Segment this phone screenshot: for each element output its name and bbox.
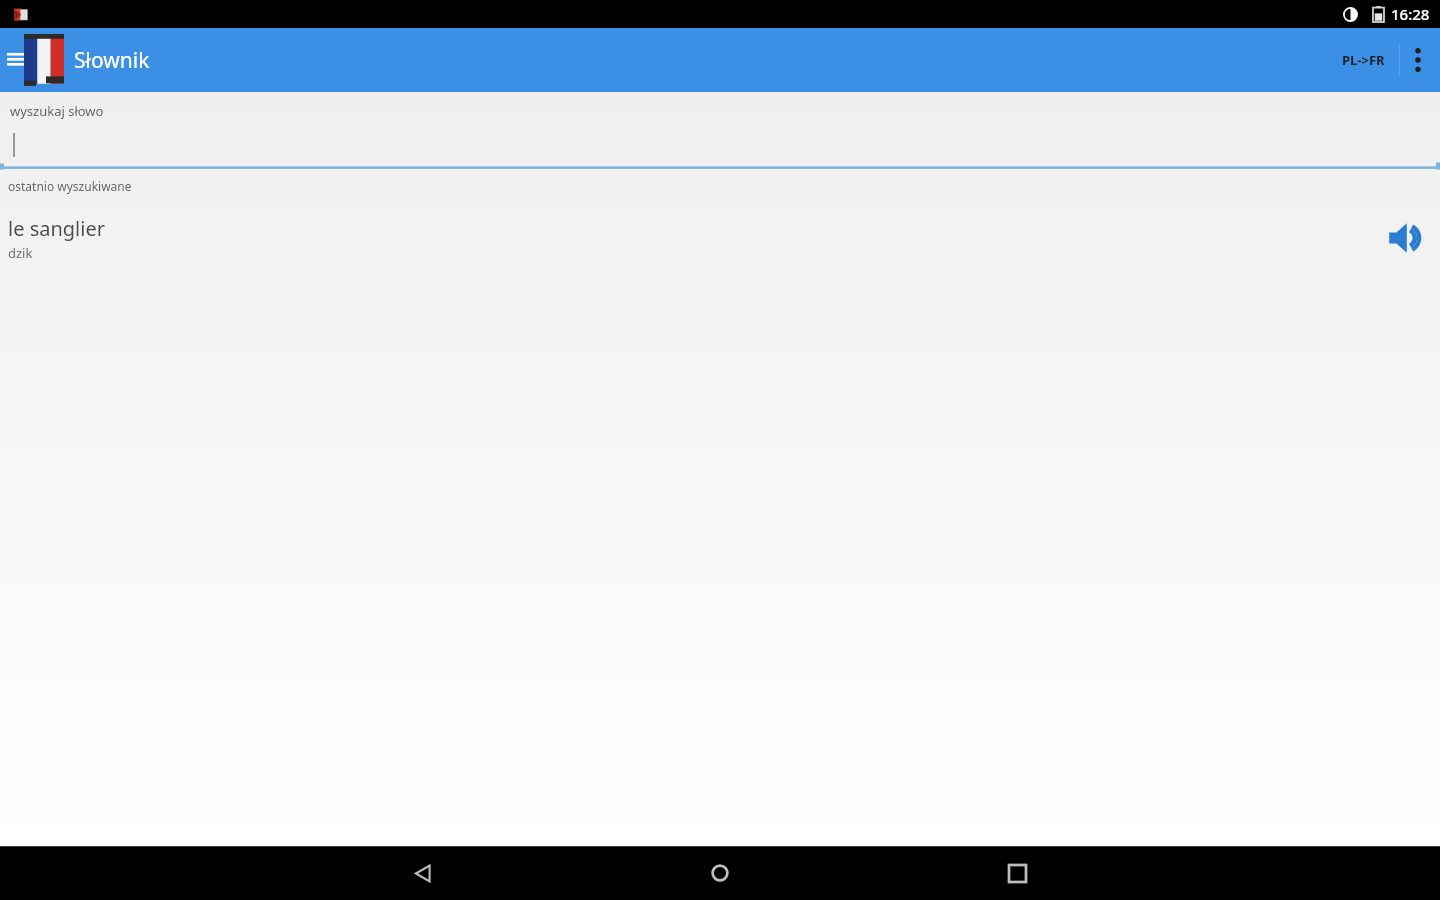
button[interactable]: Back (399, 849, 447, 897)
button[interactable]: Play pronunciation (1380, 212, 1432, 264)
staticText: Słownik (74, 46, 150, 75)
button[interactable] (0, 120, 1440, 170)
staticText: 16:28 (1391, 4, 1430, 24)
staticText: ostatnio wyszukiwane (8, 178, 132, 194)
button[interactable]: Home (694, 847, 746, 899)
button[interactable]: Open navigation menu (0, 42, 28, 78)
staticText: dzik (8, 244, 33, 262)
staticText: PL->FR (1342, 51, 1385, 69)
button[interactable]: PL->FR (1328, 28, 1399, 92)
button[interactable]: Recent apps (993, 849, 1041, 897)
staticText: le sanglier (8, 215, 105, 242)
button[interactable]: More options (1400, 28, 1436, 92)
button[interactable]: le sanglier (0, 208, 1440, 268)
staticText: wyszukaj słowo (10, 102, 104, 120)
